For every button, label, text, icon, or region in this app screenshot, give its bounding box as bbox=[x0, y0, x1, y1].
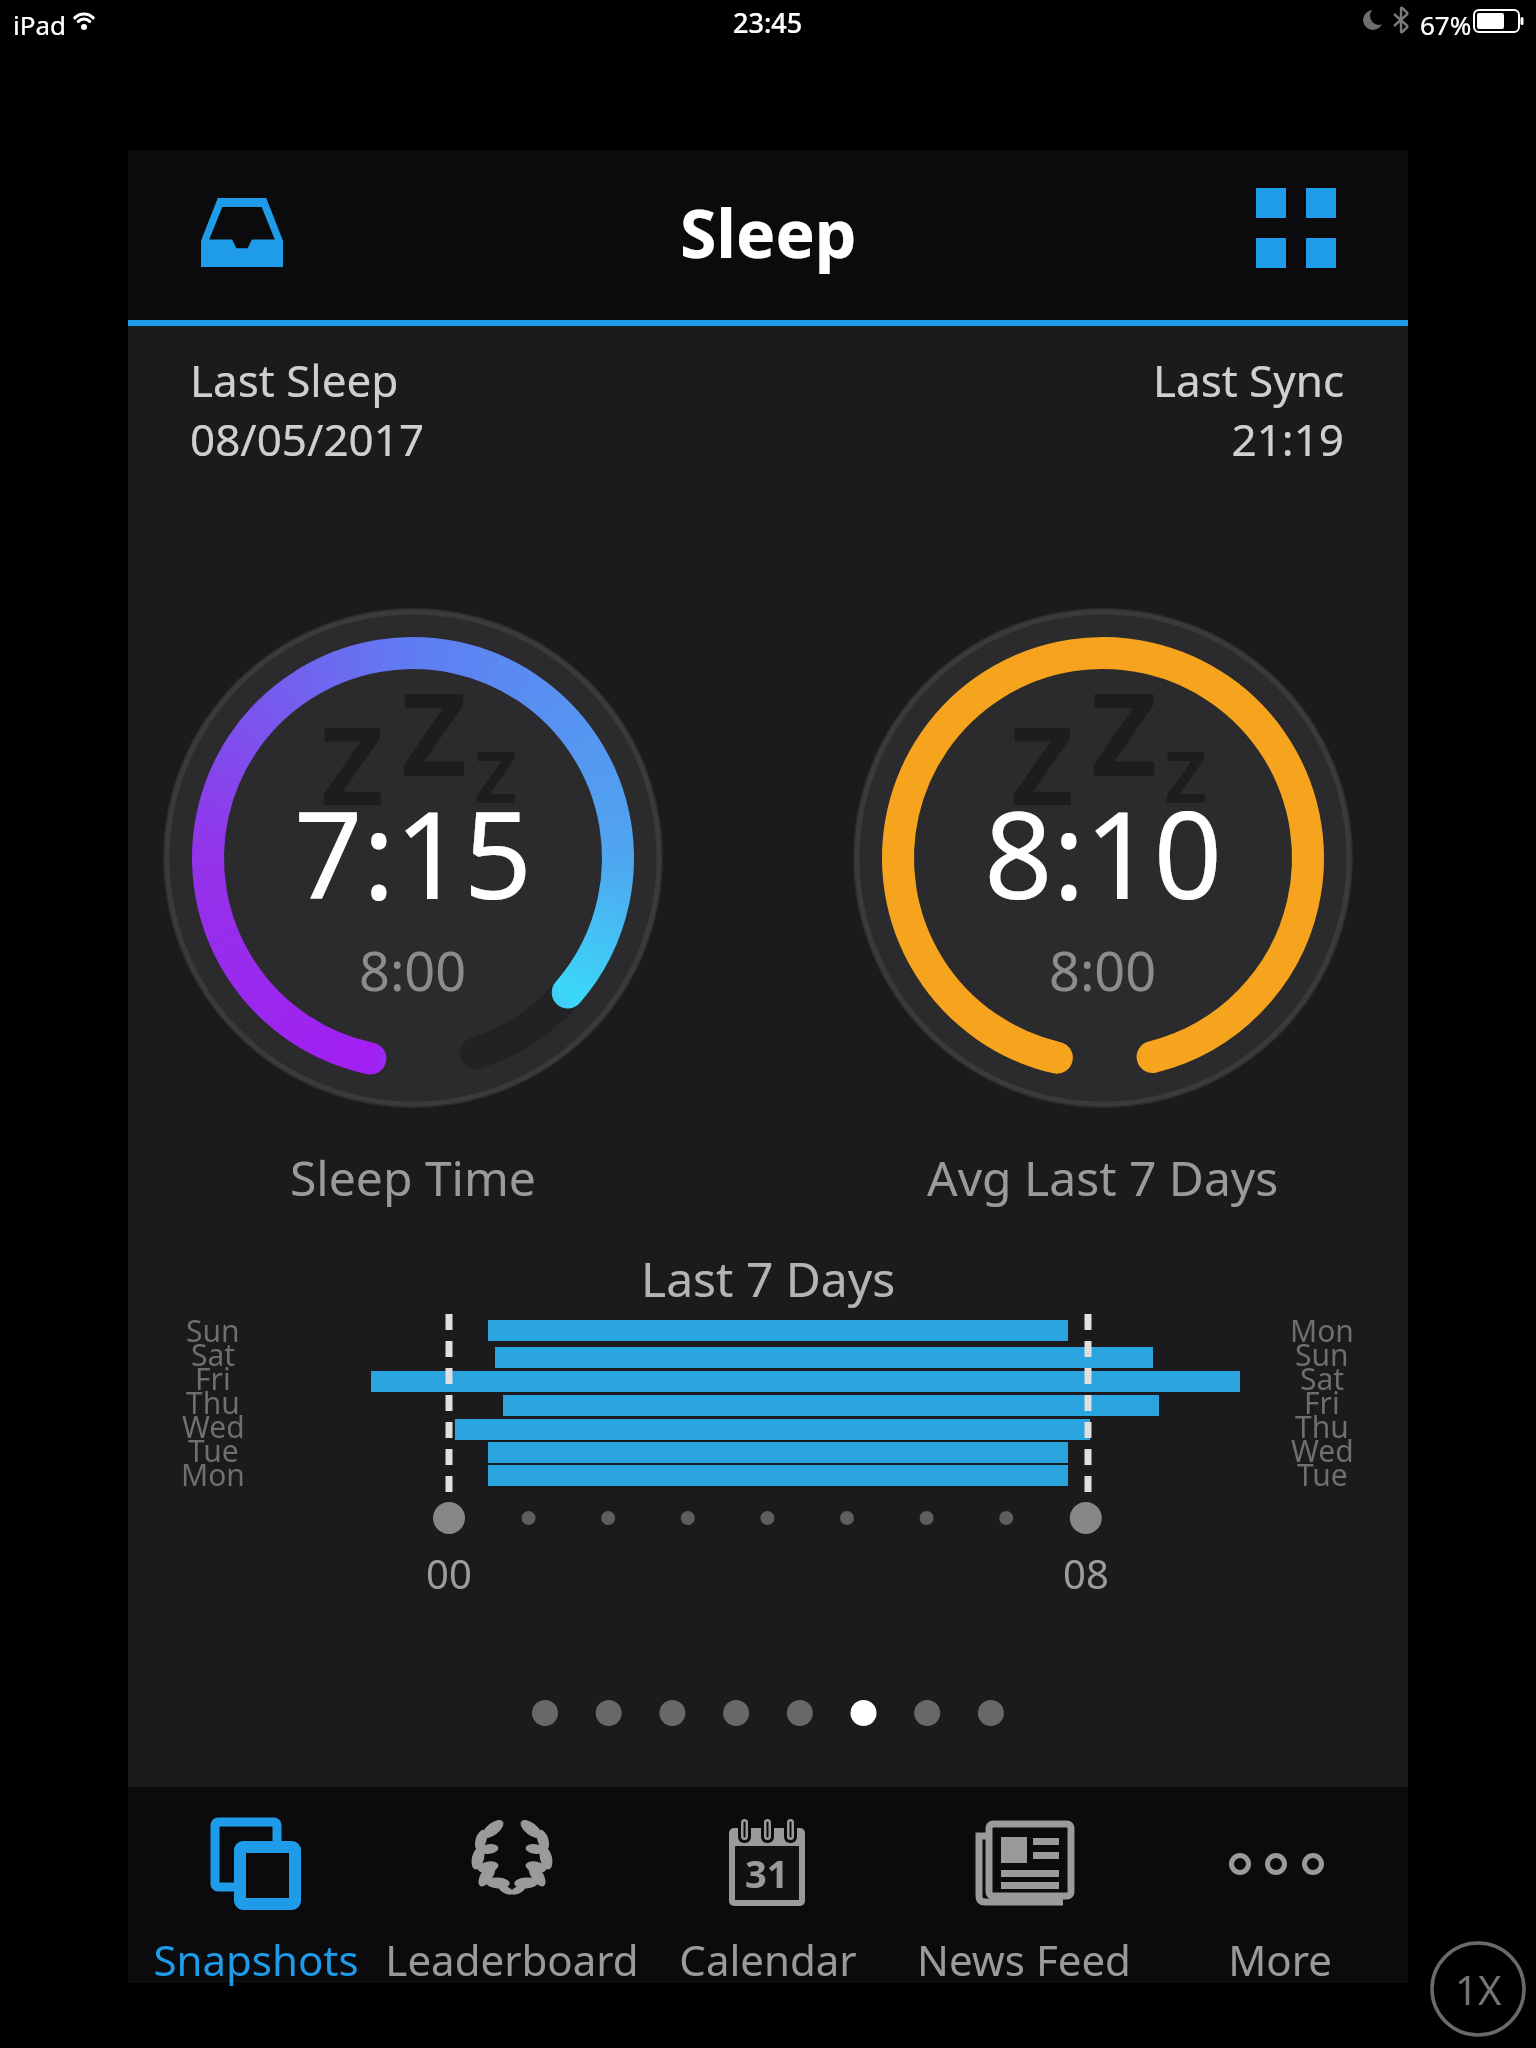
staticText: Calendar bbox=[640, 1931, 896, 1988]
staticText: 31 bbox=[745, 1847, 789, 1899]
staticText: Wed bbox=[182, 1406, 245, 1447]
staticText: 8:10 bbox=[984, 771, 1223, 934]
staticText: Fri bbox=[1304, 1382, 1340, 1423]
staticText: Z bbox=[1011, 690, 1074, 837]
staticText: Sun bbox=[186, 1310, 240, 1351]
button[interactable]: News Feed bbox=[896, 1787, 1152, 1983]
staticText: Sleep Time bbox=[290, 1145, 536, 1210]
button[interactable] bbox=[1256, 188, 1336, 268]
staticText: Z bbox=[475, 726, 517, 824]
staticText: 8:00 bbox=[359, 933, 467, 1007]
staticText: Last Sleep 08/05/2017 bbox=[190, 350, 425, 468]
staticText: Wed bbox=[1291, 1430, 1354, 1471]
staticText: Last 7 Days bbox=[641, 1246, 896, 1311]
staticText: Z bbox=[401, 654, 468, 809]
staticText: Sat bbox=[1300, 1358, 1345, 1399]
staticText: Tue bbox=[1297, 1454, 1348, 1495]
staticText: Z bbox=[1165, 726, 1207, 824]
staticText: 00 bbox=[426, 1546, 472, 1600]
staticText: Leaderboard bbox=[384, 1931, 640, 1988]
staticText: Sun bbox=[1295, 1334, 1349, 1375]
button[interactable]: 1X bbox=[1430, 1941, 1526, 2037]
staticText: Thu bbox=[186, 1382, 240, 1423]
staticText: Thu bbox=[1295, 1406, 1349, 1447]
button[interactable]: Calendar bbox=[640, 1787, 896, 1983]
staticText: 1X bbox=[1455, 1962, 1502, 2016]
staticText: Avg Last 7 Days bbox=[927, 1145, 1279, 1210]
button[interactable]: Leaderboard bbox=[384, 1787, 640, 1983]
staticText: Z bbox=[321, 690, 384, 837]
staticText: 8:00 bbox=[1049, 933, 1157, 1007]
staticText: Fri bbox=[195, 1358, 231, 1399]
staticText: Sleep bbox=[680, 187, 857, 277]
staticText: Snapshots bbox=[128, 1931, 384, 1988]
staticText: iPad bbox=[13, 7, 67, 42]
staticText: 7:15 bbox=[294, 771, 533, 934]
staticText: Mon bbox=[1290, 1310, 1354, 1351]
staticText: Z bbox=[1091, 654, 1158, 809]
button[interactable]: More bbox=[1152, 1787, 1408, 1983]
staticText: More bbox=[1152, 1931, 1408, 1988]
button[interactable] bbox=[201, 198, 283, 267]
staticText: Last Sync 21:19 bbox=[744, 350, 1344, 468]
staticText: News Feed bbox=[896, 1931, 1152, 1988]
staticText: Tue bbox=[188, 1430, 239, 1471]
staticText: 08 bbox=[1063, 1546, 1109, 1600]
staticText: Mon bbox=[181, 1454, 245, 1495]
staticText: 23:45 bbox=[733, 4, 803, 41]
staticText: 67% bbox=[1420, 7, 1472, 42]
button[interactable]: Snapshots bbox=[128, 1787, 384, 1983]
staticText: Sat bbox=[191, 1334, 236, 1375]
